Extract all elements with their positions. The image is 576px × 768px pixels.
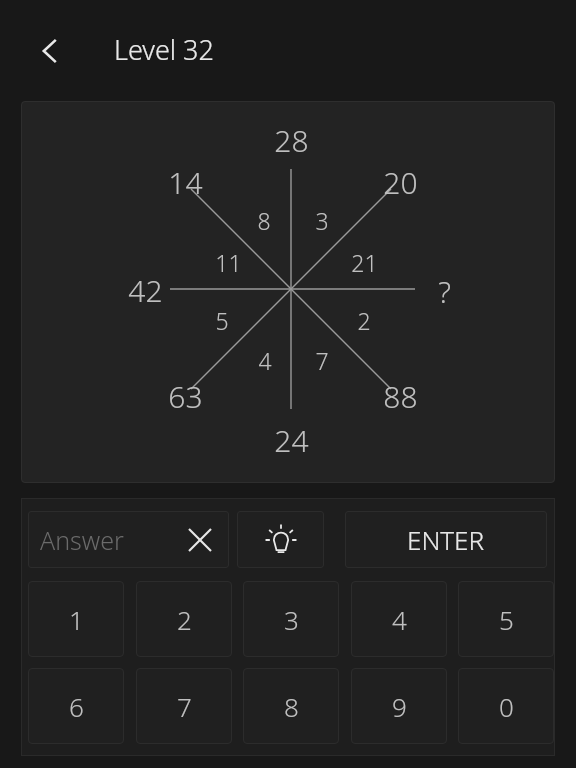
button[interactable]: 4 (351, 581, 447, 657)
staticText: 9 (392, 689, 407, 724)
button[interactable]: 1 (28, 581, 124, 657)
staticText: 0 (499, 689, 514, 724)
staticText: ENTER (407, 522, 485, 557)
staticText: 14 (168, 162, 203, 203)
staticText: 28 (274, 120, 309, 161)
staticText: 63 (168, 376, 203, 417)
button[interactable]: 7 (136, 668, 232, 744)
staticText: 21 (351, 247, 378, 278)
button[interactable]: 6 (28, 668, 124, 744)
staticText: 8 (257, 205, 271, 236)
button[interactable]: 0 (458, 668, 554, 744)
staticText: 7 (315, 345, 329, 376)
staticText: 3 (284, 602, 299, 637)
staticText: 1 (69, 602, 84, 637)
staticText: 24 (274, 420, 309, 461)
button[interactable]: Clear answer (183, 523, 217, 557)
button[interactable]: 5 (458, 581, 554, 657)
staticText: 2 (177, 602, 192, 637)
button[interactable]: 8 (243, 668, 339, 744)
staticText: 11 (215, 247, 242, 278)
staticText: Answer (40, 523, 183, 557)
staticText: 4 (258, 345, 272, 376)
staticText: 5 (499, 602, 514, 637)
staticText: 88 (383, 376, 418, 417)
button[interactable]: Hint (237, 511, 324, 568)
staticText: 3 (315, 205, 329, 236)
staticText: 20 (383, 162, 418, 203)
button[interactable]: ENTER (345, 511, 547, 568)
staticText: 42 (128, 270, 163, 311)
staticText: 4 (392, 602, 407, 637)
button[interactable]: Back (22, 22, 80, 80)
staticText: 6 (69, 689, 84, 724)
staticText: 7 (177, 689, 192, 724)
button[interactable]: 9 (351, 668, 447, 744)
staticText: 5 (215, 305, 229, 336)
button[interactable]: 2 (136, 581, 232, 657)
button[interactable]: Answer (28, 511, 229, 568)
staticText: Level 32 (114, 31, 214, 68)
staticText: 2 (357, 305, 371, 336)
button[interactable]: 3 (243, 581, 339, 657)
staticText: 8 (284, 689, 299, 724)
staticText: ? (438, 271, 451, 312)
